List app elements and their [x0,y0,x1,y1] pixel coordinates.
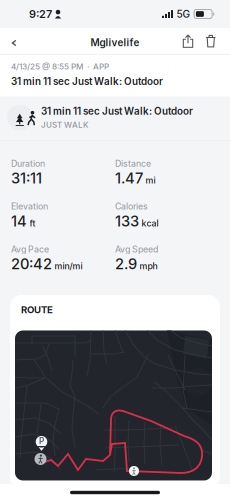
staticText: kcal [141,218,158,228]
button[interactable]: Back [3,30,24,52]
staticText: 31:11 [11,169,42,187]
staticText: Duration [11,158,45,169]
staticText: 2.9 [115,255,137,273]
staticText: ft [29,218,35,228]
staticText: Avg Pace [11,244,49,255]
staticText: Distance [115,158,151,169]
staticText: Mglivelife [90,36,139,49]
button[interactable]: Share [176,29,199,53]
staticText: 4/13/25 @ 8:55 PM · APP [11,62,109,71]
button[interactable]: Delete [199,29,222,52]
staticText: 31 min 11 sec Just Walk: Outdoor [11,75,163,87]
staticText: mi [145,175,155,186]
staticText: JUST WALK [41,120,89,130]
staticText: mph [139,261,157,271]
staticText: 20:42 [11,255,52,273]
staticText: 133 [115,212,139,230]
staticText: min/mi [54,261,82,271]
staticText: 9:27 [29,7,52,21]
staticText: ROUTE [21,304,53,315]
staticText: 5G [176,8,190,20]
staticText: Avg Speed [115,244,158,255]
staticText: 14 [11,212,27,230]
staticText: P [39,436,44,446]
staticText: 1.47 [115,169,143,187]
staticText: Elevation [11,201,48,212]
staticText: 31 min 11 sec Just Walk: Outdoor [41,105,193,117]
staticText: Calories [115,201,148,212]
